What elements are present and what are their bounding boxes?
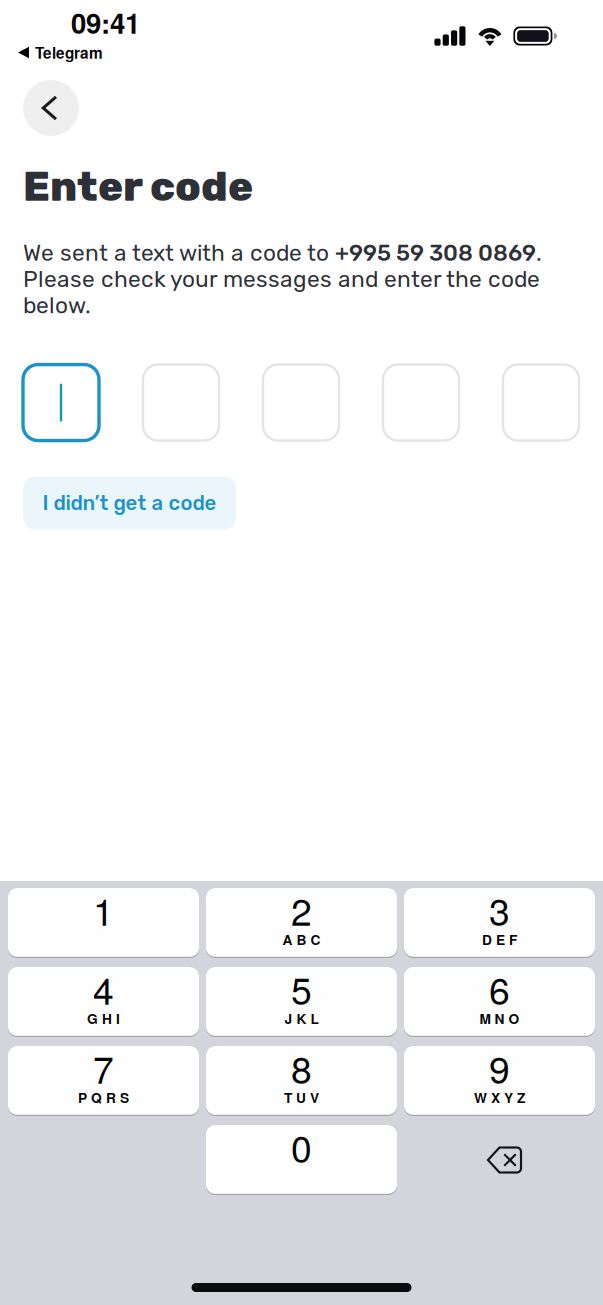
staticText: 8 bbox=[291, 1041, 312, 1094]
staticText: 1 bbox=[93, 883, 114, 936]
staticText: G H I bbox=[87, 1009, 120, 1028]
staticText: 5 bbox=[291, 962, 312, 1015]
staticText: We sent a text with a code to +995 59 30… bbox=[23, 240, 542, 319]
staticText: 5 bbox=[291, 962, 312, 1015]
staticText: Telegram bbox=[35, 41, 103, 63]
staticText: I didn’t get a code bbox=[42, 491, 216, 515]
button[interactable]: 3 bbox=[404, 888, 595, 958]
staticText: G H I bbox=[87, 1009, 120, 1028]
staticText: M N O bbox=[479, 1009, 519, 1028]
staticText: A B C bbox=[282, 930, 320, 949]
button[interactable]: I didn’t get a code bbox=[23, 476, 236, 529]
staticText: T U V bbox=[284, 1088, 319, 1107]
button[interactable]: 2 bbox=[206, 888, 397, 958]
staticText: 4 bbox=[93, 962, 114, 1015]
staticText: W X Y Z bbox=[474, 1088, 525, 1107]
staticText: Enter code bbox=[23, 162, 253, 211]
button[interactable]: 1 bbox=[8, 888, 199, 958]
staticText: 7 bbox=[93, 1041, 114, 1094]
button[interactable]: 0 bbox=[206, 1125, 397, 1195]
staticText: 2 bbox=[291, 883, 312, 936]
staticText: 0 bbox=[291, 1120, 312, 1173]
staticText: T U V bbox=[284, 1088, 319, 1107]
staticText: M N O bbox=[479, 1009, 519, 1028]
staticText: P Q R S bbox=[78, 1088, 129, 1107]
button[interactable]: 9 bbox=[404, 1046, 595, 1116]
staticText: 2 bbox=[291, 883, 312, 936]
staticText: 9 bbox=[489, 1041, 510, 1094]
staticText: 7 bbox=[93, 1041, 114, 1094]
staticText: 6 bbox=[489, 962, 510, 1015]
staticText: 0 bbox=[291, 1120, 312, 1173]
staticText: P Q R S bbox=[78, 1088, 129, 1107]
staticText: 1 bbox=[93, 883, 114, 936]
staticText: 3 bbox=[489, 883, 510, 936]
button[interactable]: 5 bbox=[206, 967, 397, 1037]
staticText: J K L bbox=[284, 1009, 318, 1028]
staticText: J K L bbox=[284, 1009, 318, 1028]
staticText: 3 bbox=[489, 883, 510, 936]
staticText: D E F bbox=[482, 930, 517, 949]
button[interactable]: 6 bbox=[404, 967, 595, 1037]
staticText: 09:41 bbox=[71, 3, 140, 42]
staticText: 6 bbox=[489, 962, 510, 1015]
staticText: D E F bbox=[482, 930, 517, 949]
button[interactable]: 8 bbox=[206, 1046, 397, 1116]
staticText: 8 bbox=[291, 1041, 312, 1094]
staticText: 4 bbox=[93, 962, 114, 1015]
button[interactable]: 7 bbox=[8, 1046, 199, 1116]
staticText: 9 bbox=[489, 1041, 510, 1094]
button[interactable]: Delete bbox=[404, 1125, 595, 1195]
button[interactable]: Back bbox=[23, 80, 79, 136]
staticText: W X Y Z bbox=[474, 1088, 525, 1107]
staticText: A B C bbox=[282, 930, 320, 949]
button[interactable]: 4 bbox=[8, 967, 199, 1037]
